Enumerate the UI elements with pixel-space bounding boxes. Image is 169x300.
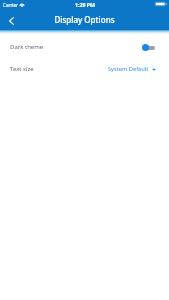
button[interactable]: Dark theme (0, 34, 169, 51)
staticText: Dark theme (10, 43, 44, 51)
staticText: System Default (108, 65, 149, 73)
staticText: Carrier (3, 2, 18, 8)
staticText: Text size (10, 65, 34, 73)
staticText: Display Options (54, 14, 115, 25)
button[interactable]: Text size (0, 51, 169, 73)
button[interactable]: System Default (108, 65, 156, 73)
button[interactable]: Back (0, 10, 23, 30)
button[interactable]: Dark theme (142, 44, 155, 51)
staticText: 1:29 PM (75, 1, 95, 8)
